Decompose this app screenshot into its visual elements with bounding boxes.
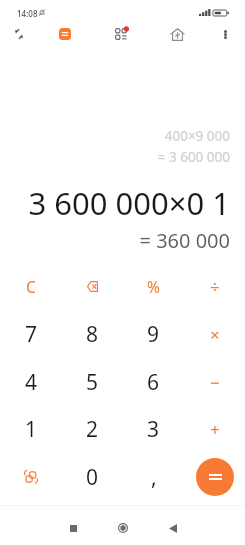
staticText: 9 [147, 320, 160, 349]
button[interactable]: Home [98, 513, 148, 543]
button[interactable]: 2 [62, 405, 123, 453]
button[interactable]: + [184, 405, 245, 453]
staticText: ÷ [210, 275, 220, 298]
staticText: 400×9 000 [164, 127, 230, 145]
button[interactable]: Converters [101, 18, 141, 50]
staticText: 7 [25, 320, 38, 349]
button[interactable]: Equals [196, 458, 234, 496]
staticText: 1 [25, 415, 38, 444]
staticText: 4 [25, 368, 38, 397]
button[interactable]: 0 [62, 453, 123, 501]
staticText: − [210, 371, 220, 394]
button[interactable]: % [123, 262, 184, 310]
staticText: % [147, 276, 160, 297]
button[interactable]: × [184, 310, 245, 358]
button[interactable]: More options [207, 18, 243, 50]
button[interactable]: 1 [0, 405, 62, 453]
staticText: 3 [147, 415, 160, 444]
button[interactable]: Backspace [62, 262, 123, 310]
staticText: 14:08 [17, 8, 38, 18]
button[interactable]: 8 [62, 310, 123, 358]
button[interactable]: 5 [62, 358, 123, 406]
button[interactable]: 3 [123, 405, 184, 453]
button[interactable]: 4 [0, 358, 62, 406]
staticText: 6 [147, 368, 160, 397]
button[interactable]: Calculator [45, 18, 85, 50]
staticText: = 3 600 000 [157, 148, 230, 166]
button[interactable]: ÷ [184, 262, 245, 310]
button[interactable]: Back [148, 513, 198, 543]
staticText: 0 [86, 463, 99, 492]
staticText: = 360 000 [139, 227, 230, 254]
button[interactable]: , [123, 453, 184, 501]
button[interactable]: 6 [123, 358, 184, 406]
button[interactable]: − [184, 358, 245, 406]
staticText: 3 600 000×0 1 [28, 182, 230, 224]
staticText: C [26, 276, 36, 297]
staticText: 2 [86, 415, 99, 444]
button[interactable]: Recents [48, 513, 98, 543]
staticText: 8 [86, 320, 99, 349]
button[interactable]: C [0, 262, 62, 310]
button[interactable]: Unit converter [0, 453, 62, 501]
button[interactable]: 7 [0, 310, 62, 358]
staticText: + [210, 418, 220, 441]
button[interactable]: Mortgage [157, 18, 197, 50]
staticText: × [210, 323, 220, 346]
button[interactable]: Collapse [0, 18, 38, 50]
staticText: 5 [86, 368, 99, 397]
button[interactable]: 9 [123, 310, 184, 358]
staticText: , [151, 463, 157, 492]
